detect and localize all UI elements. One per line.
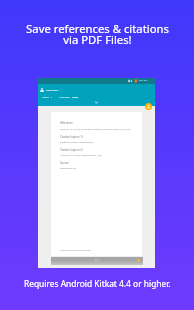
staticText: Save references & citations xyxy=(26,21,169,36)
staticText: Citation (option 1) xyxy=(60,135,83,139)
staticText: Source: xyxy=(60,161,70,165)
button[interactable]: Show more print options xyxy=(94,100,99,105)
staticText: (Longhurst, 2019) or Longhurst (2019) xyxy=(60,141,94,144)
staticText: books.google.com xyxy=(60,167,77,170)
staticText: Citation (option 2) xyxy=(60,148,83,152)
staticText: 4:07 PM xyxy=(139,79,148,82)
staticText: Reference xyxy=(60,121,73,125)
staticText: via PDF Files! xyxy=(63,32,132,47)
staticText: Save as PDF xyxy=(46,89,59,92)
staticText: Letter xyxy=(72,96,79,99)
staticText: 1/1 xyxy=(95,259,99,263)
staticText: Requires Android Kitkat 4.4 or higher. xyxy=(24,278,171,289)
staticText: 1 xyxy=(51,96,53,99)
staticText: Longhurst, M.A. (2019). The Benefits of … xyxy=(60,128,131,131)
button[interactable]: Expand print options xyxy=(145,103,152,110)
staticText: Created by Cite Checker. Generated xyxy=(60,249,92,252)
staticText: Copies xyxy=(42,96,49,99)
staticText: Paper size xyxy=(59,96,70,99)
staticText: Longhurst, M.A. (2019). Reading Benefits… xyxy=(60,154,102,157)
